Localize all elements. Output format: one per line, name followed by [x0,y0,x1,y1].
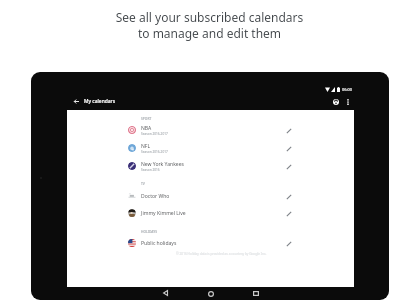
button[interactable]: Help [329,95,342,108]
staticText: NFL [141,143,151,150]
button[interactable]: Edit [283,161,294,172]
button[interactable]: Home [205,288,216,299]
button[interactable]: Edit [283,191,294,202]
button[interactable]: Edit [283,208,294,219]
staticText: Season 2016-2017 [141,150,168,154]
button[interactable]: Doctor Who [120,188,294,204]
button[interactable]: More options [341,95,354,108]
staticText: See all your subscribed calendars to man… [0,9,419,41]
staticText: Season 2016 [141,168,160,172]
button[interactable]: Back [160,287,171,298]
staticText: Public holidays [141,240,177,247]
button[interactable]: NBA [120,122,294,138]
button[interactable]: Back [70,95,83,108]
staticText: Jimmy Kimmel Live [141,210,186,217]
staticText: SPORT [141,116,152,120]
staticText: © 2016 Holiday data is provided as a cou… [176,252,267,256]
staticText: My calendars [84,98,116,105]
button[interactable]: Recent apps [250,288,261,299]
button[interactable]: NFL [120,140,294,156]
staticText: 06:00 [342,87,352,92]
button[interactable]: Jimmy Kimmel Live [120,205,294,221]
button[interactable]: New York Yankees [120,158,294,174]
button[interactable]: Edit [283,125,294,136]
button[interactable]: Edit [283,143,294,154]
staticText: Season 2016-2017 [141,132,168,136]
staticText: New York Yankees [141,161,184,168]
staticText: HOLIDAYS [141,229,158,233]
button[interactable]: Public holidays [120,235,294,251]
button[interactable]: Edit [283,238,294,249]
staticText: NBA [141,125,152,132]
staticText: Doctor Who [141,193,170,200]
staticText: TV [141,181,145,185]
